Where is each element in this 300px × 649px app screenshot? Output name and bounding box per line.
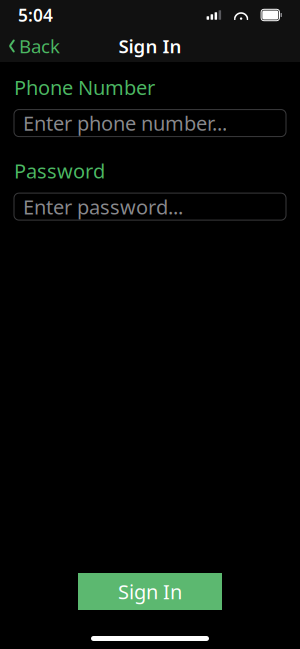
staticText: Enter phone number... [23,110,227,136]
button[interactable]: Back [0,28,68,64]
button[interactable]: Sign In [78,573,222,610]
staticText: Back [19,34,60,58]
staticText: Password [14,158,105,184]
staticText: Sign In [118,34,181,58]
staticText: Phone Number [14,74,155,101]
staticText: 5:04 [18,3,53,26]
staticText: Enter password... [23,193,183,220]
staticText: Sign In [118,578,182,605]
